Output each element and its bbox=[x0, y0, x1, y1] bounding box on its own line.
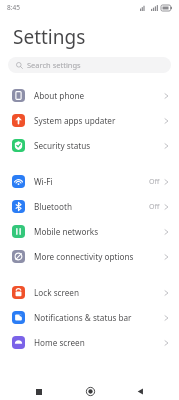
button[interactable]: System apps updater bbox=[0, 108, 179, 133]
staticText: Search settings bbox=[27, 60, 81, 70]
button[interactable]: Recents bbox=[28, 383, 50, 400]
staticText: Mobile networks bbox=[34, 226, 99, 237]
staticText: More connectivity options bbox=[34, 251, 134, 262]
staticText: System apps updater bbox=[34, 115, 116, 126]
button[interactable]: About phone bbox=[0, 83, 179, 108]
staticText: Security status bbox=[34, 140, 91, 151]
button[interactable]: Search settings bbox=[8, 57, 171, 73]
staticText: Settings bbox=[13, 24, 86, 50]
button[interactable]: Home bbox=[79, 383, 101, 400]
staticText: 8:45 bbox=[7, 3, 20, 12]
staticText: Notifications & status bar bbox=[34, 312, 132, 323]
staticText: Wi-Fi bbox=[34, 176, 53, 187]
button[interactable]: Mobile networks bbox=[0, 219, 179, 244]
button[interactable]: Bluetooth bbox=[0, 194, 179, 219]
staticText: Off bbox=[149, 202, 160, 212]
button[interactable]: Wi-Fi bbox=[0, 169, 179, 194]
staticText: Lock screen bbox=[34, 287, 80, 298]
staticText: Home screen bbox=[34, 337, 85, 348]
staticText: Bluetooth bbox=[34, 201, 72, 212]
button[interactable]: More connectivity options bbox=[0, 244, 179, 269]
button[interactable]: Home screen bbox=[0, 330, 179, 355]
staticText: Off bbox=[149, 177, 160, 187]
staticText: About phone bbox=[34, 90, 85, 101]
button[interactable]: Notifications & status bar bbox=[0, 305, 179, 330]
button[interactable]: Back bbox=[129, 383, 151, 400]
button[interactable]: Security status bbox=[0, 133, 179, 158]
button[interactable]: Lock screen bbox=[0, 280, 179, 305]
